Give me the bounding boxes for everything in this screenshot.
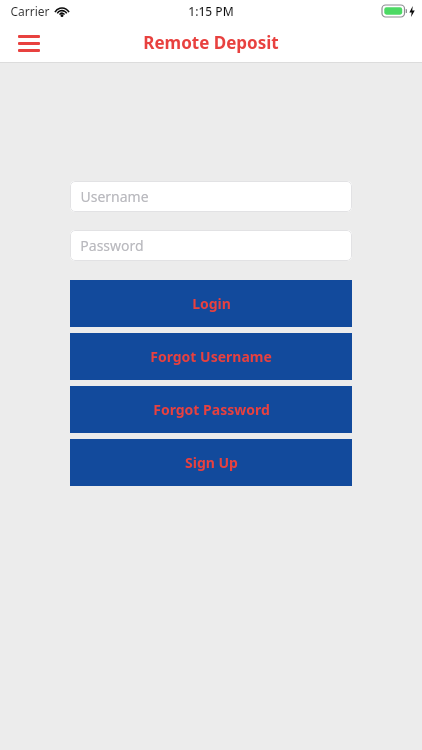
button[interactable]: Login xyxy=(70,280,352,327)
staticText: Carrier xyxy=(10,3,50,19)
staticText: Password xyxy=(80,236,144,255)
staticText: 1:15 PM xyxy=(188,3,234,19)
button[interactable]: Forgot Password xyxy=(70,386,352,433)
button[interactable]: Sign Up xyxy=(70,439,352,486)
staticText: Forgot Username xyxy=(150,347,272,366)
button[interactable]: Forgot Username xyxy=(70,333,352,380)
staticText: Forgot Password xyxy=(153,400,270,419)
button[interactable]: Open navigation menu xyxy=(12,26,46,60)
staticText: Remote Deposit xyxy=(143,31,279,54)
staticText: Username xyxy=(80,187,149,206)
staticText: Login xyxy=(192,294,231,313)
staticText: Sign Up xyxy=(185,453,238,472)
button[interactable]: Password xyxy=(70,230,352,261)
button[interactable]: Username xyxy=(70,181,352,212)
